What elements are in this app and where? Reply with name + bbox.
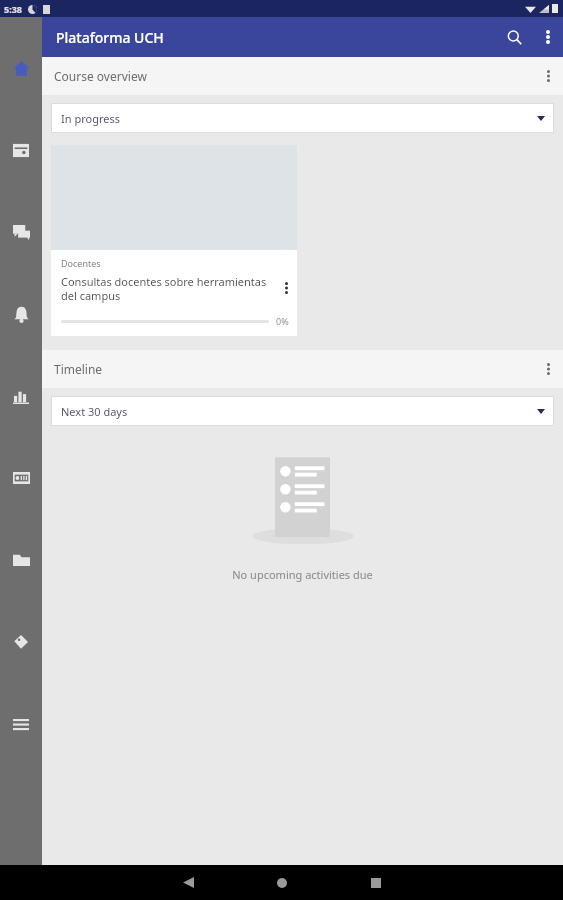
staticText: 5:38 [4, 3, 22, 15]
button[interactable]: Calendar [0, 135, 42, 165]
staticText: Course overview [54, 68, 147, 84]
button[interactable]: In progress [51, 103, 554, 133]
button[interactable]: Home [0, 53, 42, 83]
button[interactable]: Timeline options [533, 354, 563, 384]
staticText: Next 30 days [61, 404, 128, 419]
staticText: Docentes [61, 257, 101, 269]
staticText: No upcoming activities due [232, 567, 373, 582]
staticText: In progress [61, 111, 120, 126]
staticText: Consultas docentes sobre herramientas de… [61, 274, 275, 303]
button[interactable]: Next 30 days [51, 396, 554, 426]
button[interactable]: Docentes [51, 145, 297, 336]
button[interactable]: Recent apps [344, 865, 408, 900]
button[interactable]: Tags [0, 627, 42, 657]
button[interactable]: Messages [0, 217, 42, 247]
button[interactable]: Files [0, 545, 42, 575]
button[interactable]: More [0, 709, 42, 739]
button[interactable]: Badges [0, 463, 42, 493]
staticText: Timeline [54, 361, 103, 377]
button[interactable]: Back [156, 865, 220, 900]
button[interactable]: Course options [275, 274, 297, 302]
button[interactable]: Course overview options [533, 61, 563, 91]
button[interactable]: Search [495, 18, 533, 56]
button[interactable]: More options [533, 22, 563, 52]
staticText: 0% [276, 315, 289, 327]
button[interactable]: Home [250, 865, 314, 900]
staticText: Plataforma UCH [56, 28, 164, 47]
button[interactable]: Grades [0, 381, 42, 411]
button[interactable]: Notifications [0, 299, 42, 329]
